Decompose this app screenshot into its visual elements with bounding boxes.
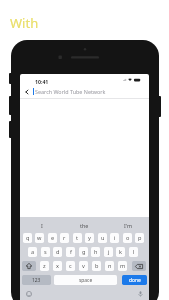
button[interactable]: q [23, 233, 32, 243]
button[interactable]: Backspace [132, 261, 146, 271]
button[interactable]: the [63, 217, 106, 233]
button[interactable]: s [41, 247, 50, 257]
button[interactable]: space [54, 275, 117, 285]
button[interactable]: c [66, 261, 75, 271]
button[interactable]: z [40, 261, 49, 271]
button[interactable]: k [116, 247, 125, 257]
button[interactable]: e [48, 233, 57, 243]
staticText: f [70, 248, 72, 256]
button[interactable]: 123 [22, 275, 51, 285]
button[interactable]: done [122, 275, 147, 285]
staticText: 10:41 [35, 78, 49, 85]
button[interactable]: Back [20, 85, 33, 98]
staticText: s [44, 248, 47, 256]
button[interactable]: y [85, 233, 94, 243]
staticText: b [95, 262, 99, 270]
staticText: done [129, 277, 141, 284]
button[interactable]: w [35, 233, 44, 243]
staticText: j [108, 248, 110, 256]
button[interactable]: j [104, 247, 113, 257]
staticText: t [76, 234, 79, 242]
staticText: space [79, 277, 93, 284]
staticText: c [69, 262, 72, 270]
button[interactable]: p [135, 233, 144, 243]
staticText: i [114, 234, 116, 242]
staticText: v [82, 262, 85, 270]
staticText: r [63, 234, 66, 242]
staticText: o [126, 234, 130, 242]
staticText: n [108, 262, 112, 270]
button[interactable]: f [66, 247, 75, 257]
staticText: l [133, 248, 135, 256]
button[interactable]: x [53, 261, 62, 271]
staticText: d [56, 248, 60, 256]
staticText: m [120, 262, 126, 270]
staticText: g [82, 248, 86, 256]
button[interactable]: a [28, 247, 37, 257]
staticText: a [31, 248, 35, 256]
button[interactable]: Back [20, 85, 149, 98]
button[interactable]: I'm [106, 217, 149, 233]
staticText: p [138, 234, 142, 242]
button[interactable]: b [92, 261, 101, 271]
staticText: the [80, 222, 89, 229]
staticText: With [10, 14, 39, 32]
button[interactable]: u [98, 233, 107, 243]
staticText: e [51, 234, 55, 242]
button[interactable]: i [110, 233, 119, 243]
button[interactable]: Shift [22, 261, 36, 271]
button[interactable]: I [20, 217, 63, 233]
staticText: y [88, 234, 91, 242]
button[interactable]: g [79, 247, 88, 257]
button[interactable]: d [53, 247, 62, 257]
staticText: x [56, 262, 59, 270]
staticText: I [41, 222, 43, 229]
button[interactable]: r [60, 233, 69, 243]
button[interactable]: v [79, 261, 88, 271]
staticText: q [26, 234, 30, 242]
button[interactable]: o [123, 233, 132, 243]
staticText: Search World Tube Network [35, 88, 106, 95]
button[interactable]: Microphone [131, 287, 149, 300]
staticText: u [101, 234, 105, 242]
staticText: 123 [32, 277, 41, 284]
button[interactable]: m [118, 261, 127, 271]
staticText: k [119, 248, 122, 256]
button[interactable]: Emoji [20, 287, 38, 300]
staticText: h [94, 248, 98, 256]
staticText: I'm [124, 222, 132, 229]
staticText: w [37, 234, 42, 242]
staticText: z [43, 262, 46, 270]
button[interactable]: t [73, 233, 82, 243]
button[interactable]: h [91, 247, 100, 257]
button[interactable]: n [105, 261, 114, 271]
button[interactable]: l [129, 247, 138, 257]
